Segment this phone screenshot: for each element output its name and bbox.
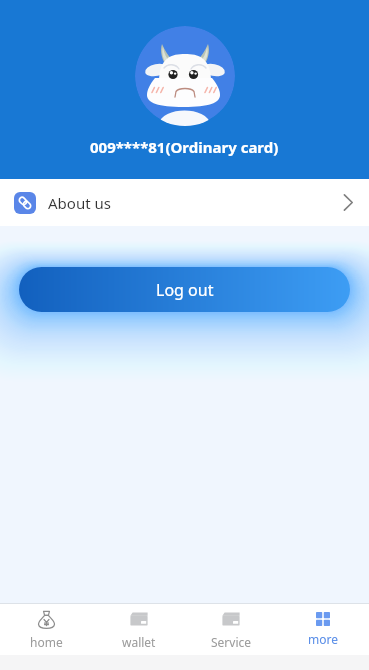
button[interactable]: more [277, 604, 369, 655]
button[interactable]: Service [185, 604, 277, 655]
button[interactable]: wallet [93, 604, 185, 655]
other: Avatar [135, 26, 235, 126]
other: Open About us [343, 194, 353, 211]
staticText: home [30, 634, 63, 650]
staticText: Log out [156, 279, 214, 301]
button[interactable]: Log out [19, 267, 350, 312]
staticText: wallet [122, 634, 156, 650]
button[interactable]: About us [0, 179, 369, 226]
staticText: more [308, 631, 338, 647]
staticText: Service [211, 634, 252, 650]
staticText: About us [48, 193, 111, 213]
staticText: 009****81(Ordinary card) [90, 137, 279, 157]
button[interactable]: home [0, 604, 93, 655]
